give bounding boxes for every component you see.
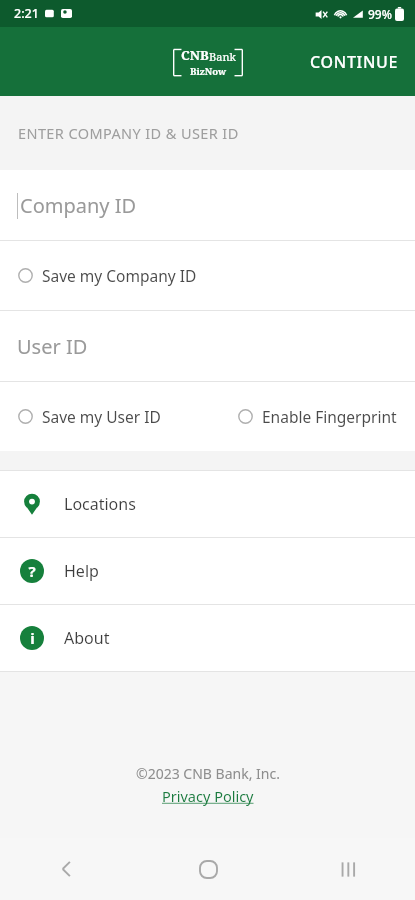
staticText: Bank bbox=[209, 49, 236, 64]
button[interactable]: Recents bbox=[325, 846, 371, 892]
staticText: Save my Company ID bbox=[42, 265, 197, 286]
staticText: Company ID bbox=[20, 192, 137, 219]
button[interactable]: Company ID bbox=[0, 170, 415, 240]
button[interactable]: Back bbox=[44, 846, 90, 892]
staticText: CNB bbox=[181, 46, 209, 64]
staticText: 99% bbox=[368, 6, 392, 22]
staticText: User ID bbox=[17, 333, 88, 360]
staticText: Save my User ID bbox=[42, 406, 161, 427]
button[interactable]: Privacy Policy bbox=[162, 786, 254, 806]
staticText: Help bbox=[64, 560, 99, 582]
staticText: BizNow bbox=[190, 65, 227, 78]
staticText: ©2023 CNB Bank, Inc. bbox=[136, 764, 280, 783]
other: Help bbox=[20, 559, 44, 583]
staticText: ? bbox=[28, 561, 36, 581]
button[interactable]: Help bbox=[0, 538, 415, 604]
staticText: 2:21 bbox=[14, 5, 39, 22]
other: Locations bbox=[20, 492, 44, 516]
other: About bbox=[20, 626, 44, 650]
staticText: About bbox=[64, 627, 110, 649]
button[interactable]: User ID bbox=[0, 311, 415, 381]
staticText: Privacy Policy bbox=[162, 786, 254, 806]
button[interactable]: Home bbox=[185, 846, 231, 892]
staticText: Locations bbox=[64, 493, 136, 515]
button[interactable]: About bbox=[0, 605, 415, 671]
button[interactable]: Save my User ID bbox=[14, 402, 165, 431]
staticText: CONTINUE bbox=[310, 51, 399, 73]
button[interactable]: Save my Company ID bbox=[14, 261, 201, 290]
button[interactable]: Enable Fingerprint bbox=[234, 402, 401, 431]
staticText: Enable Fingerprint bbox=[262, 406, 397, 427]
staticText: ENTER COMPANY ID & USER ID bbox=[18, 123, 239, 143]
button[interactable]: CONTINUE bbox=[294, 39, 415, 85]
staticText: i bbox=[30, 628, 35, 648]
button[interactable]: Locations bbox=[0, 471, 415, 537]
